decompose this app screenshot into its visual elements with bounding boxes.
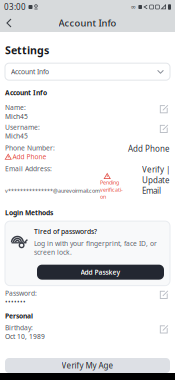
staticText: Account Info (11, 67, 49, 76)
staticText: Name: (5, 103, 26, 112)
button[interactable]: Account Info (5, 63, 170, 80)
staticText: Oct 10, 1989 (5, 332, 45, 341)
staticText: Username: (5, 123, 40, 132)
button[interactable]: Edit Password: (158, 289, 170, 301)
staticText: Password: (5, 289, 37, 298)
staticText: Verify My Age (61, 360, 113, 371)
staticText: Mich45 (5, 132, 28, 140)
staticText: Login Methods (5, 208, 53, 217)
staticText: Verify | Update Email (142, 164, 170, 196)
staticText: Phone Number: (5, 143, 55, 152)
staticText: ∞ (131, 3, 137, 11)
button[interactable]: Edit Birthday: (158, 323, 170, 335)
button[interactable]: Verify | Update Email (140, 164, 170, 196)
staticText: Account Info (58, 17, 116, 29)
staticText: v***************@aurevoirmail.com (5, 187, 100, 194)
staticText: Personal (5, 311, 33, 320)
staticText: Mich45 (5, 112, 28, 121)
button[interactable]: Edit Username: (158, 123, 170, 135)
staticText: Tired of passwords? (34, 227, 97, 236)
staticText: Settings (5, 43, 49, 57)
staticText: Add Phone (12, 152, 46, 161)
button[interactable]: Add Passkey (37, 265, 164, 280)
button[interactable]: Verify My Age (5, 358, 170, 373)
staticText: 03:00 (4, 2, 26, 12)
staticText: Log in with your fingerprint, face ID, o… (34, 239, 157, 257)
staticText: Add Passkey (80, 268, 120, 277)
staticText: Pending verification (100, 179, 123, 200)
button[interactable]: Back (0, 14, 18, 32)
staticText: Account Info (5, 88, 47, 97)
staticText: Add Phone (128, 143, 170, 154)
staticText: Birthday: (5, 323, 33, 332)
staticText: Email Address: (5, 164, 52, 173)
staticText: ••••••• (5, 297, 26, 306)
button[interactable]: Edit Name: (158, 103, 170, 115)
button[interactable]: Add Phone (128, 143, 170, 154)
